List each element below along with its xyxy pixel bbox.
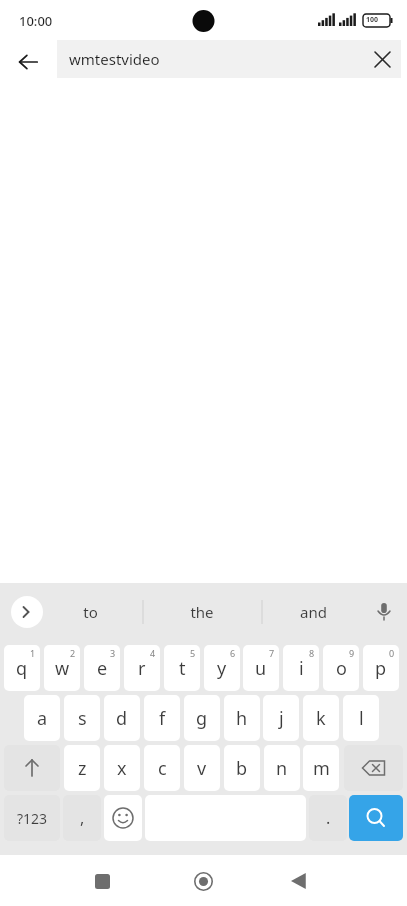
staticText: v [197, 756, 207, 781]
button[interactable]: b [224, 745, 260, 791]
staticText: , [80, 807, 85, 829]
staticText: . [326, 807, 331, 829]
staticText: u [255, 656, 267, 681]
staticText: 6 [230, 647, 236, 659]
staticText: 100 [366, 15, 379, 25]
button[interactable]: the [158, 591, 246, 633]
staticText: f [159, 706, 166, 731]
staticText: 8 [309, 647, 315, 659]
button[interactable]: y [204, 645, 240, 691]
staticText: w [55, 656, 70, 681]
button[interactable]: l [343, 695, 379, 741]
staticText: c [158, 756, 167, 781]
staticText: q [16, 656, 28, 681]
staticText: a [37, 706, 48, 731]
staticText: e [97, 656, 108, 681]
button[interactable]: Voice input [369, 596, 399, 626]
button[interactable]: j [263, 695, 299, 741]
staticText: ?123 [17, 809, 48, 828]
button[interactable]: Back [283, 865, 315, 897]
staticText: g [196, 706, 208, 731]
button[interactable]: Home [187, 865, 219, 897]
staticText: r [138, 656, 146, 681]
button[interactable]: m [303, 745, 339, 791]
staticText: 9 [349, 647, 355, 659]
button[interactable]: f [144, 695, 180, 741]
button[interactable]: q [4, 645, 40, 691]
staticText: wmtestvideo [69, 49, 363, 69]
staticText: x [117, 756, 127, 781]
staticText: to [83, 602, 98, 622]
button[interactable]: to [46, 591, 134, 633]
button[interactable]: Search [349, 795, 403, 841]
button[interactable]: Back [8, 42, 48, 82]
button[interactable]: d [104, 695, 140, 741]
button[interactable]: i [283, 645, 319, 691]
staticText: 1 [30, 647, 36, 659]
button[interactable]: Emoji [104, 795, 142, 841]
button[interactable]: g [184, 695, 220, 741]
staticText: 0 [389, 647, 395, 659]
staticText: k [316, 706, 326, 731]
button[interactable]: Clear [363, 40, 401, 78]
button[interactable]: Recents [86, 865, 118, 897]
button[interactable]: s [64, 695, 100, 741]
button[interactable]: Backspace [344, 745, 403, 791]
button[interactable]: p [363, 645, 399, 691]
staticText: p [375, 656, 387, 681]
staticText: 4 [150, 647, 156, 659]
staticText: 5 [190, 647, 196, 659]
button[interactable]: x [104, 745, 140, 791]
staticText: 2 [70, 647, 76, 659]
staticText: 3 [110, 647, 116, 659]
staticText: l [359, 706, 364, 731]
button[interactable]: Expand suggestions [11, 596, 43, 628]
button[interactable]: k [303, 695, 339, 741]
staticText: the [190, 602, 214, 622]
staticText: d [116, 706, 128, 731]
staticText: m [313, 756, 330, 781]
button[interactable]: o [323, 645, 359, 691]
staticText: o [336, 656, 347, 681]
staticText: j [279, 706, 284, 731]
staticText: b [236, 756, 248, 781]
staticText: 7 [269, 647, 275, 659]
staticText: y [217, 656, 227, 681]
staticText: t [179, 656, 186, 681]
staticText: 10:00 [19, 12, 53, 30]
button[interactable]: ?123 [4, 795, 60, 841]
button[interactable]: w [44, 645, 80, 691]
staticText: i [299, 656, 304, 681]
button[interactable]: . [309, 795, 347, 841]
button[interactable]: e [84, 645, 120, 691]
button[interactable]: u [243, 645, 279, 691]
button[interactable]: t [164, 645, 200, 691]
button[interactable]: and [269, 591, 357, 633]
button[interactable]: Shift [4, 745, 60, 791]
staticText: s [78, 706, 87, 731]
button[interactable]: v [184, 745, 220, 791]
button[interactable]: r [124, 645, 160, 691]
button[interactable]: , [63, 795, 101, 841]
staticText: and [300, 602, 327, 622]
button[interactable]: a [24, 695, 60, 741]
staticText: n [276, 756, 288, 781]
staticText: h [236, 706, 248, 731]
button[interactable]: h [224, 695, 260, 741]
button[interactable]: c [144, 745, 180, 791]
button[interactable]: wmtestvideo [57, 40, 401, 78]
button[interactable]: z [64, 745, 100, 791]
staticText: z [78, 756, 87, 781]
button[interactable]: n [264, 745, 300, 791]
